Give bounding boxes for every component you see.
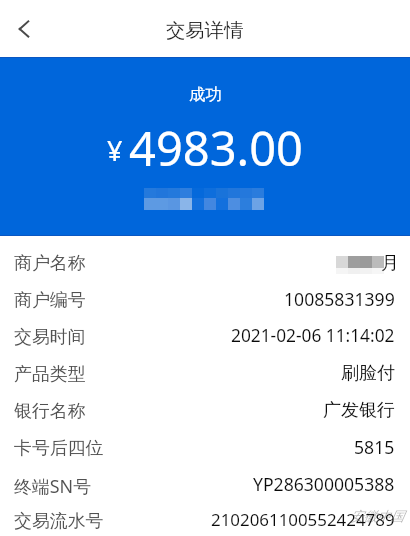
staticText: 卡号后四位 (14, 437, 104, 460)
staticText: 交易时间 (14, 326, 86, 349)
staticText: YP286300005388 (253, 472, 395, 496)
button[interactable]: 卡号后四位 (0, 428, 410, 465)
staticText: 10085831399 (284, 287, 395, 311)
staticText: ¥ (107, 132, 123, 169)
staticText: 成功 (189, 84, 222, 105)
staticText: 终端SN号 (14, 474, 92, 498)
staticText: 2102061100552424789 (211, 508, 395, 531)
staticText: 产品类型 (14, 363, 86, 386)
staticText: 5815 (354, 435, 395, 459)
button[interactable]: 商户名称 (0, 243, 410, 280)
button[interactable]: 终端SN号 (0, 465, 410, 502)
staticText: 4983.00 (129, 116, 303, 180)
button[interactable]: Back (2, 7, 46, 51)
button[interactable]: 交易流水号 (0, 502, 410, 536)
button[interactable]: 商户编号 (0, 280, 410, 317)
staticText: 商户编号 (14, 289, 86, 312)
staticText: 刷脸付 (341, 362, 395, 385)
button[interactable]: 交易时间 (0, 317, 410, 354)
staticText: 广发银行 (323, 399, 395, 422)
staticText: 银行名称 (14, 400, 86, 423)
button[interactable]: 产品类型 (0, 354, 410, 391)
staticText: 月 (381, 252, 399, 275)
staticText: 安徽中国 (350, 508, 404, 525)
staticText: 2021-02-06 11:14:02 (231, 324, 395, 348)
button[interactable]: 银行名称 (0, 391, 410, 428)
staticText: 交易流水号 (14, 510, 104, 533)
staticText: 交易详情 (166, 18, 244, 42)
staticText: 商户名称 (14, 252, 86, 275)
